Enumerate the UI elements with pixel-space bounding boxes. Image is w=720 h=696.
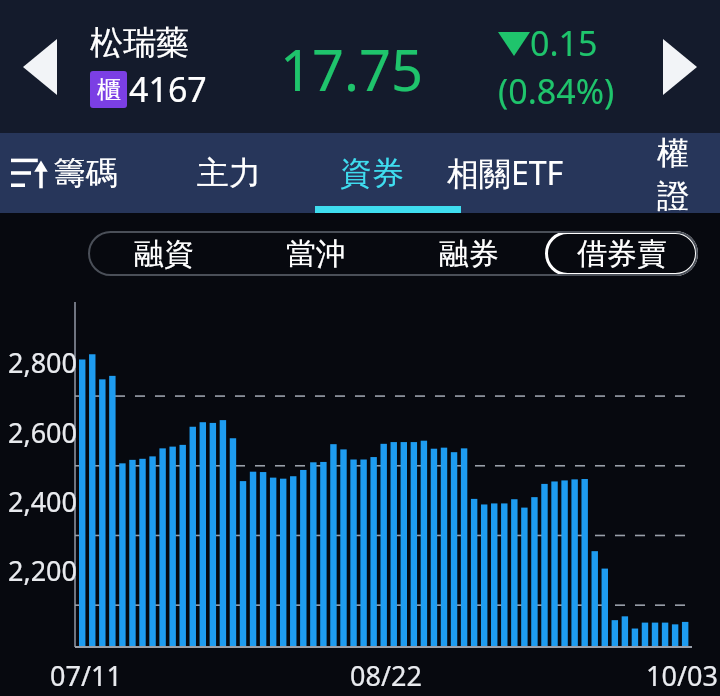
button[interactable]: 當沖 [240,231,392,276]
staticText: 17.75 [280,31,424,107]
button[interactable]: 資券 [340,133,404,213]
staticText: 資券 [340,153,404,193]
button[interactable]: 籌碼 [54,133,118,213]
staticText: 櫃 [97,75,121,105]
staticText: 融券 [439,235,499,273]
button[interactable]: Previous stock [12,39,68,95]
staticText: 松瑞藥 [90,22,189,64]
staticText: 權證 [657,133,720,213]
button[interactable]: Next stock [652,39,708,95]
staticText: 2,800 [8,344,78,381]
staticText: 主力 [197,153,261,193]
staticText: 4167 [129,66,207,112]
staticText: 0.15 [530,20,598,66]
button[interactable]: Sort [2,146,56,200]
staticText: 2,200 [8,552,78,589]
button[interactable]: 相關ETF [447,133,564,213]
staticText: 08/22 [350,657,422,694]
button[interactable]: 權證 [657,133,720,213]
staticText: 10/03 [646,657,718,694]
staticText: 融資 [134,235,194,273]
staticText: 借券賣 [577,235,667,273]
button[interactable]: 借券賣 [545,231,698,276]
staticText: 07/11 [50,657,122,694]
staticText: 2,400 [8,483,78,520]
staticText: 相關ETF [447,151,564,195]
staticText: 2,600 [8,414,78,451]
staticText: 籌碼 [54,153,118,193]
button[interactable]: 主力 [197,133,261,213]
button[interactable]: 融資 [88,231,240,276]
staticText: 當沖 [286,235,346,273]
button[interactable]: 融券 [392,231,545,276]
staticText: (0.84%) [498,68,615,114]
